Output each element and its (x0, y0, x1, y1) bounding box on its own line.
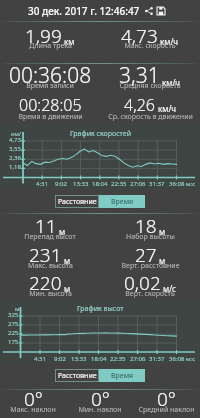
staticText: 225 (8, 329, 19, 337)
staticText: км (64, 36, 75, 47)
staticText: Верт. расстояние (121, 261, 180, 271)
staticText: 18 (135, 213, 157, 239)
staticText: Расстояние (58, 371, 97, 381)
button[interactable]: 3,31 (100, 57, 200, 93)
staticText: Ср. скорость в движении (108, 112, 193, 122)
staticText: 27:06 (130, 180, 146, 188)
staticText: 275 (8, 320, 19, 328)
staticText: Время записи (26, 81, 74, 91)
staticText: 325 (8, 311, 19, 319)
button[interactable]: 0° (133, 382, 199, 417)
staticText: График высот (77, 304, 124, 314)
staticText: Мин. высота (29, 289, 72, 299)
button[interactable]: 0° (67, 382, 133, 417)
staticText: км/ч (162, 77, 181, 88)
staticText: 27 (135, 242, 157, 268)
staticText: Расстояние (58, 197, 97, 207)
staticText: 0° (91, 386, 110, 412)
staticText: График скоростей (70, 129, 131, 139)
staticText: 3,55 (9, 145, 21, 153)
button[interactable]: Share (143, 5, 155, 17)
staticText: 18:04 (91, 355, 107, 363)
staticText: км/ч (160, 36, 179, 47)
staticText: 220 (29, 270, 62, 296)
staticText: м (64, 255, 71, 266)
button[interactable]: 0,02 (100, 266, 200, 301)
staticText: 0° (24, 386, 43, 412)
staticText: Время (111, 197, 134, 207)
staticText: м (15, 305, 20, 313)
staticText: Перепад высот (24, 232, 76, 242)
staticText: 4,26 (124, 94, 156, 116)
staticText: м (159, 226, 166, 237)
staticText: 175 (8, 338, 19, 346)
staticText: км/ч (158, 103, 177, 114)
staticText: м/с (163, 283, 177, 294)
staticText: м:с (186, 355, 196, 363)
staticText: 00:28:05 (19, 94, 82, 116)
staticText: 11 (35, 213, 57, 239)
staticText: м:с (186, 180, 196, 188)
staticText: Средний наклон (138, 405, 195, 415)
button[interactable]: 27 (100, 238, 200, 273)
staticText: Мин. наклон (78, 405, 122, 415)
staticText: 9:02 (55, 180, 67, 188)
staticText: Макс. высота (28, 261, 73, 271)
staticText: Время (111, 371, 134, 381)
button[interactable]: Время (99, 369, 145, 382)
button[interactable]: 4,73 (100, 19, 200, 53)
staticText: Длина трека (29, 41, 72, 51)
staticText: 0,02 (124, 270, 161, 296)
staticText: 27:06 (130, 355, 146, 363)
staticText: 22:35 (111, 180, 127, 188)
staticText: Верт. скорость (125, 289, 175, 299)
staticText: 36:08 (169, 180, 185, 188)
staticText: 2,36 (9, 154, 21, 162)
button[interactable]: 11 (0, 209, 100, 244)
staticText: Средняя скорость (119, 81, 181, 91)
staticText: м (59, 226, 66, 237)
staticText: 4,73 (9, 136, 21, 144)
staticText: 4:31 (34, 355, 46, 363)
staticText: 9:02 (54, 355, 66, 363)
button[interactable]: Save (155, 5, 167, 17)
staticText: 36:08 (169, 355, 185, 363)
button[interactable]: 4,26 (100, 90, 200, 124)
staticText: 1,18 (9, 163, 21, 171)
staticText: Набор высоты (126, 232, 175, 242)
staticText: 1,99 (25, 23, 62, 49)
button[interactable]: 18 (100, 209, 200, 244)
button[interactable]: Расстояние (55, 369, 99, 382)
staticText: 4,73 (121, 23, 158, 49)
staticText: м (159, 255, 166, 266)
button[interactable]: 220 (0, 266, 100, 301)
staticText: м (64, 283, 71, 294)
staticText: 22:35 (110, 355, 126, 363)
staticText: Макс. скорость (124, 41, 176, 51)
button[interactable]: 0° (0, 382, 66, 417)
staticText: 4:31 (36, 180, 48, 188)
staticText: 3,31 (119, 61, 160, 90)
staticText: км/ч (11, 130, 22, 138)
staticText: 231 (29, 242, 62, 268)
button[interactable]: 1,99 (0, 19, 100, 53)
staticText: 31:37 (149, 355, 165, 363)
staticText: 30 дек. 2017 г. 12:46:47 (28, 4, 140, 18)
staticText: 00:36:08 (9, 61, 92, 90)
button[interactable]: 00:36:08 (0, 57, 100, 93)
button[interactable]: 231 (0, 238, 100, 273)
staticText: 18:04 (92, 180, 108, 188)
staticText: Макс. наклон (10, 405, 56, 415)
button[interactable]: Расстояние (55, 195, 99, 208)
staticText: 31:37 (149, 180, 165, 188)
staticText: 13:33 (73, 180, 89, 188)
button[interactable]: Время (99, 195, 145, 208)
staticText: 0° (157, 386, 176, 412)
staticText: 13:33 (71, 355, 87, 363)
button[interactable]: 00:28:05 (0, 90, 100, 124)
staticText: Время в движении (18, 112, 83, 122)
